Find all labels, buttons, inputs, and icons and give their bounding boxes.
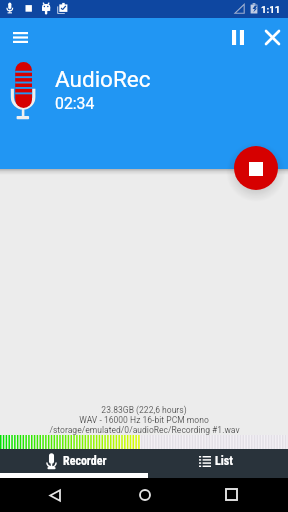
staticText: WAV - 16000 Hz 16-bit PCM mono <box>79 415 209 425</box>
button[interactable]: Pause <box>226 25 250 49</box>
button[interactable]: Recent apps <box>221 484 242 505</box>
button[interactable]: List <box>144 449 288 473</box>
staticText: List <box>215 454 233 468</box>
button[interactable]: Back <box>45 485 65 505</box>
staticText: Recorder <box>63 454 107 468</box>
button[interactable]: Recorder <box>0 449 144 473</box>
button[interactable]: Menu <box>10 27 30 47</box>
staticText: AudioRec <box>55 66 151 92</box>
staticText: 1:11 <box>261 4 281 15</box>
button[interactable]: Stop recording <box>234 146 278 190</box>
staticText: /storage/emulated/0/audioRec/Recording #… <box>49 425 240 435</box>
staticText: 02:34 <box>55 94 95 113</box>
button[interactable]: Home <box>134 484 155 505</box>
button[interactable]: Close <box>260 25 284 49</box>
staticText: 23.83GB (222,6 hours) <box>101 405 187 415</box>
